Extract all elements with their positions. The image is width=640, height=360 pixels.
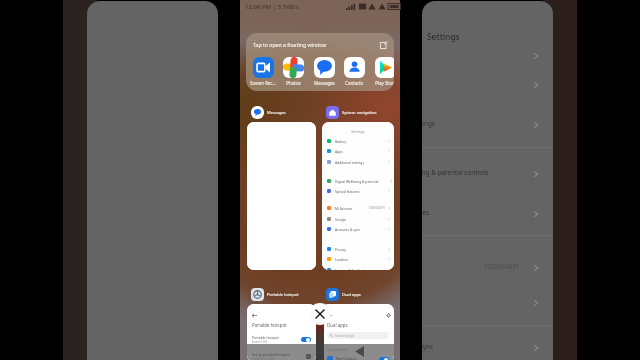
staticText: 12:08 PM | 3.7KB/s	[245, 3, 299, 11]
button[interactable]: Special features	[327, 186, 391, 195]
button[interactable]	[87, 1, 218, 360]
staticText: Apps	[335, 149, 343, 153]
staticText: Portable hotspot	[267, 292, 299, 297]
staticText: Search Google	[335, 334, 355, 338]
button[interactable]: Tap to open a floating window	[246, 33, 394, 91]
button[interactable]: Edit floating window apps	[380, 41, 388, 49]
staticText: Accounts & sync	[335, 227, 361, 231]
staticText: 5285664891	[369, 206, 385, 210]
button[interactable]: Battery	[327, 136, 391, 145]
staticText: Contacts	[345, 80, 363, 86]
button[interactable]: Mi Account	[327, 203, 391, 212]
staticText: Battery	[335, 139, 347, 143]
staticText: New Contacts	[336, 357, 357, 360]
staticText: Dual apps	[327, 322, 348, 328]
staticText: Photos	[286, 80, 301, 86]
staticText: tings	[422, 119, 435, 128]
button[interactable]: Digital Wellbeing & parental controls	[327, 176, 391, 185]
staticText: Settings	[427, 31, 460, 42]
button[interactable]: Contacts	[340, 57, 368, 86]
staticText: Screen Reco…	[249, 80, 277, 86]
button[interactable]: Screen Reco…	[249, 57, 277, 86]
staticText: Portable hotspot	[252, 335, 279, 340]
staticText: Settings	[322, 129, 394, 134]
staticText: Play Store	[375, 80, 394, 86]
staticText: sync	[422, 342, 434, 351]
staticText: Mi Account	[335, 206, 353, 210]
button[interactable]: Accounts & sync	[327, 224, 391, 233]
staticText: Messages	[267, 110, 286, 115]
staticText: Tap to open a floating window	[253, 41, 327, 48]
staticText: System navigation	[342, 110, 377, 115]
button[interactable]: Location	[327, 254, 391, 263]
staticText: Portable hotspot	[252, 322, 287, 328]
staticText: Additional settings	[335, 160, 364, 164]
staticText: Location	[335, 257, 349, 261]
staticText: Set up portable hotspot	[252, 352, 290, 357]
button[interactable]: Privacy	[327, 244, 391, 253]
staticText: Privacy	[335, 247, 346, 251]
staticText: 5285664891	[484, 262, 520, 270]
button[interactable]: Portable hotspot	[247, 286, 316, 360]
staticText: Xiaomi 1234	[252, 340, 267, 344]
staticText: res	[422, 208, 430, 217]
button[interactable]: Messages	[247, 104, 316, 270]
staticText: ing & parental controls	[422, 168, 489, 177]
button[interactable]: Google	[327, 214, 391, 223]
staticText: Messages	[314, 80, 335, 86]
button[interactable]: Services & feedback	[327, 265, 391, 270]
staticText: Services & feedback	[335, 268, 366, 270]
button[interactable]: Play Store	[371, 57, 394, 86]
button[interactable]: Photos	[279, 57, 307, 86]
staticText: Special features	[335, 189, 360, 193]
staticText: Config the hotspot	[252, 357, 275, 360]
button[interactable]: Messages	[310, 57, 338, 86]
staticText: Recommended	[327, 348, 347, 352]
staticText: Digital Wellbeing & parental controls	[335, 179, 391, 183]
button[interactable]: Apps	[327, 146, 391, 155]
button[interactable]: Settings	[422, 1, 553, 360]
button[interactable]: Additional settings	[327, 157, 391, 166]
button[interactable]: Dual apps	[322, 286, 394, 360]
button[interactable]: System navigation	[322, 104, 394, 270]
staticText: Google	[335, 217, 347, 221]
button[interactable]: Close all recent apps	[309, 303, 331, 325]
staticText: Dual apps	[342, 292, 361, 297]
